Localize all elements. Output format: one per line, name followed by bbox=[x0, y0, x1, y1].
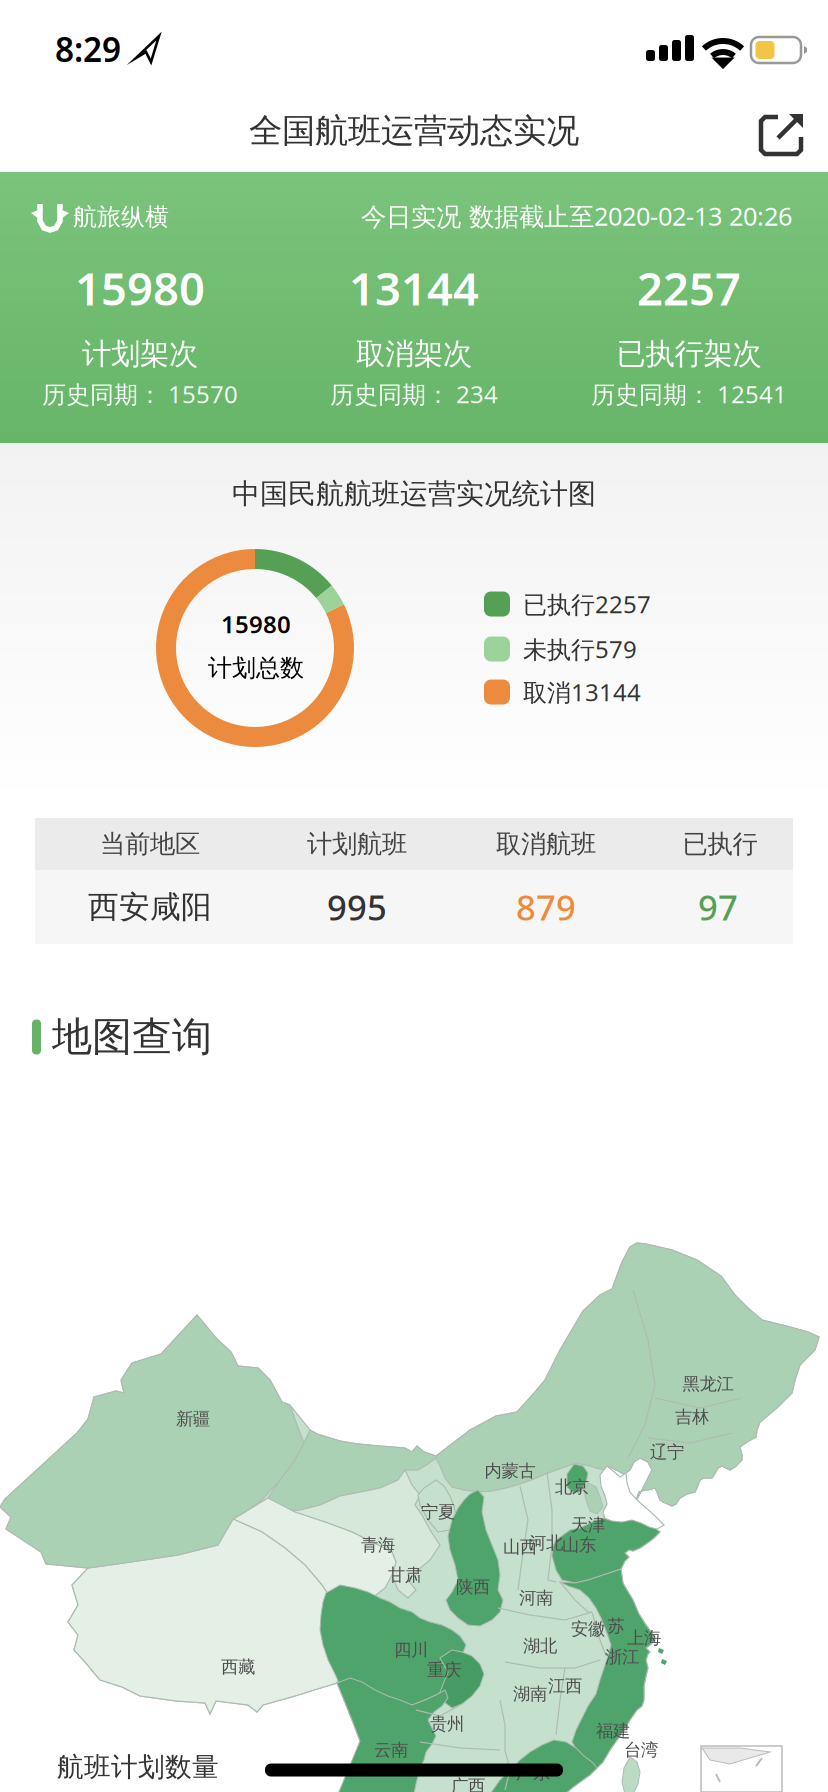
staticText: 河南 bbox=[519, 1587, 553, 1609]
staticText: 广西 bbox=[451, 1775, 485, 1792]
staticText: 山东 bbox=[562, 1534, 596, 1556]
staticText: 新疆 bbox=[176, 1408, 210, 1430]
staticText: 安徽 bbox=[571, 1618, 605, 1640]
staticText: 历史同期： 12541 bbox=[591, 378, 787, 410]
staticText: 西藏 bbox=[221, 1656, 255, 1678]
staticText: 当前地区 bbox=[100, 828, 200, 859]
staticText: 湖北 bbox=[523, 1635, 557, 1657]
staticText: 上海 bbox=[627, 1627, 661, 1649]
staticText: 今日实况 数据截止至2020-02-13 20:26 bbox=[361, 199, 792, 233]
staticText: 苏 bbox=[607, 1615, 624, 1637]
staticText: 已执行 bbox=[682, 828, 757, 859]
staticText: 航旅纵横 bbox=[73, 202, 169, 232]
staticText: 已执行2257 bbox=[523, 588, 651, 620]
staticText: 879 bbox=[516, 884, 576, 930]
staticText: 航班计划数量 bbox=[57, 1751, 219, 1783]
staticText: 13144 bbox=[349, 258, 479, 318]
staticText: 2257 bbox=[637, 258, 741, 318]
staticText: 吉林 bbox=[675, 1406, 709, 1428]
staticText: 云南 bbox=[374, 1739, 408, 1761]
staticText: 河北 bbox=[529, 1532, 563, 1554]
button[interactable]: Share bbox=[0, 0, 828, 1792]
staticText: 中国民航航班运营实况统计图 bbox=[232, 477, 596, 511]
staticText: 历史同期： 15570 bbox=[42, 378, 238, 410]
staticText: 计划航班 bbox=[307, 828, 407, 859]
staticText: 陕西 bbox=[456, 1576, 490, 1598]
staticText: 地图查询 bbox=[52, 1012, 212, 1061]
staticText: 西安咸阳 bbox=[88, 888, 212, 926]
staticText: 计划总数 bbox=[208, 653, 304, 683]
staticText: 取消架次 bbox=[356, 336, 472, 372]
staticText: 995 bbox=[327, 884, 387, 930]
staticText: 贵州 bbox=[430, 1713, 464, 1735]
staticText: 天津 bbox=[571, 1514, 605, 1536]
staticText: 广东 bbox=[516, 1762, 550, 1784]
staticText: 已执行架次 bbox=[616, 336, 761, 372]
staticText: 四川 bbox=[394, 1639, 428, 1661]
button[interactable]: Back bbox=[0, 0, 828, 1792]
staticText: 北京 bbox=[555, 1476, 589, 1498]
staticText: 取消航班 bbox=[496, 828, 596, 859]
staticText: 全国航班运营动态实况 bbox=[249, 110, 579, 151]
staticText: 湖南 bbox=[513, 1683, 547, 1705]
staticText: 甘肃 bbox=[388, 1564, 422, 1586]
staticText: 计划架次 bbox=[82, 336, 198, 372]
staticText: 青海 bbox=[361, 1534, 395, 1556]
staticText: 浙江 bbox=[605, 1646, 639, 1668]
staticText: 取消13144 bbox=[523, 676, 641, 708]
staticText: 江西 bbox=[548, 1675, 582, 1697]
staticText: 宁夏 bbox=[421, 1501, 455, 1523]
staticText: 福建 bbox=[596, 1720, 630, 1742]
staticText: 台湾 bbox=[624, 1739, 658, 1761]
staticText: 97 bbox=[698, 884, 738, 930]
staticText: 内蒙古 bbox=[484, 1460, 535, 1482]
staticText: 15980 bbox=[75, 258, 205, 318]
staticText: 8:29 bbox=[55, 27, 121, 71]
staticText: 历史同期： 234 bbox=[330, 378, 498, 410]
staticText: 辽宁 bbox=[650, 1441, 684, 1463]
staticText: 山西 bbox=[503, 1536, 537, 1558]
staticText: 黑龙江 bbox=[682, 1373, 733, 1395]
staticText: 15980 bbox=[221, 608, 291, 640]
staticText: 未执行579 bbox=[523, 633, 637, 665]
staticText: 重庆 bbox=[427, 1659, 461, 1681]
